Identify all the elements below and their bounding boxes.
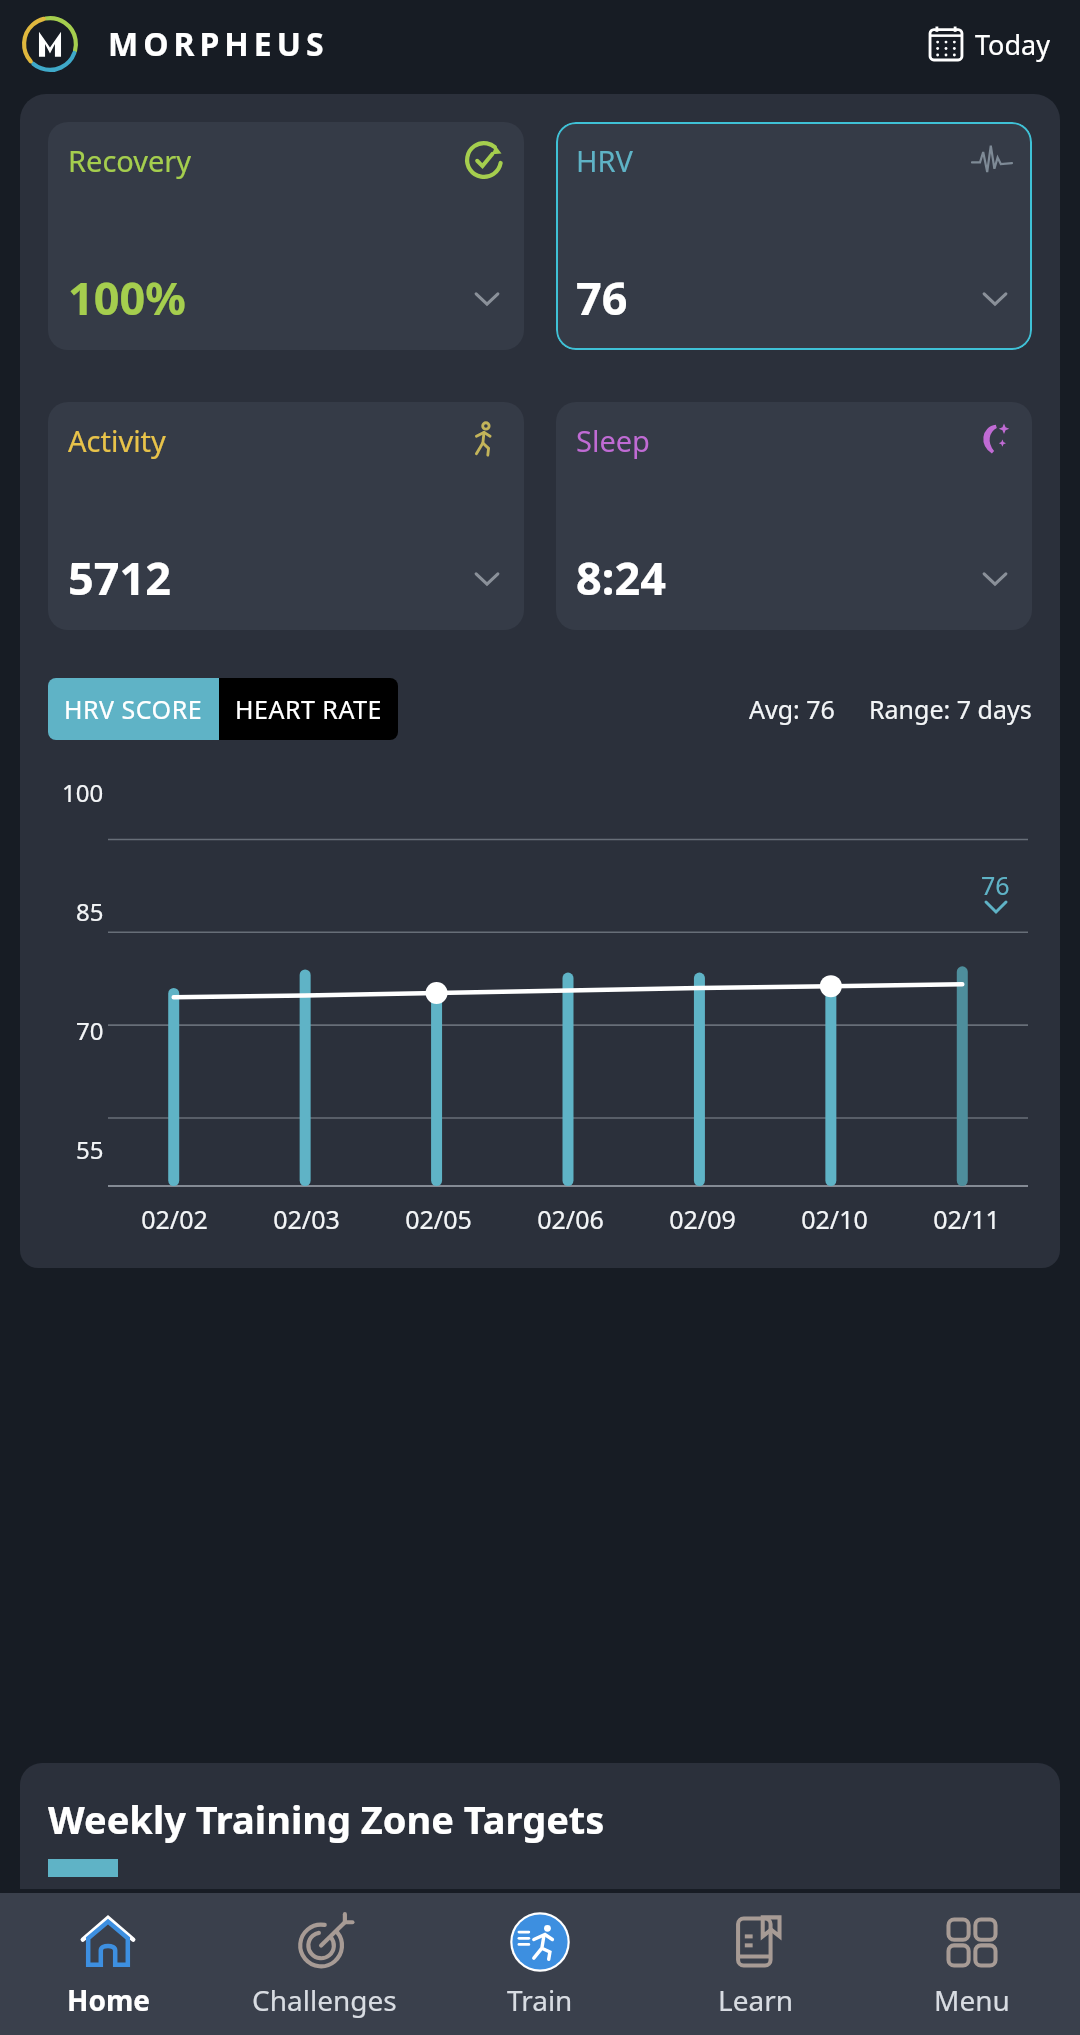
button[interactable]: Calendar bbox=[923, 21, 1054, 67]
staticText: 5712 bbox=[68, 547, 171, 608]
staticText: Today bbox=[975, 26, 1050, 63]
staticText: 02/06 bbox=[537, 1202, 604, 1236]
staticText: Range: 7 days bbox=[869, 692, 1032, 726]
staticText: 02/05 bbox=[405, 1202, 472, 1236]
staticText: Home bbox=[67, 1981, 150, 2019]
staticText: Menu bbox=[934, 1981, 1010, 2019]
staticText: HRV SCORE bbox=[64, 692, 203, 726]
button[interactable]: HRV SCORE bbox=[48, 678, 219, 740]
staticText: HRV bbox=[576, 141, 633, 180]
other: Menu bbox=[944, 1914, 1000, 1970]
staticText: 100 bbox=[62, 776, 104, 809]
button[interactable]: Activity bbox=[48, 402, 524, 630]
staticText: Activity bbox=[68, 421, 166, 460]
button[interactable]: Weekly Training Zone Targets bbox=[20, 1763, 1060, 1889]
staticText: Train bbox=[507, 1981, 573, 2019]
staticText: 100% bbox=[68, 267, 186, 328]
staticText: 02/10 bbox=[801, 1202, 868, 1236]
other: Learn bbox=[728, 1914, 784, 1970]
button[interactable]: HEART RATE bbox=[219, 678, 398, 740]
staticText: Learn bbox=[718, 1981, 794, 2019]
staticText: Weekly Training Zone Targets bbox=[48, 1793, 605, 1845]
staticText: Recovery bbox=[68, 141, 192, 180]
staticText: Avg: 76 bbox=[749, 692, 835, 726]
staticText: 55 bbox=[76, 1133, 104, 1166]
button[interactable]: Home bbox=[0, 1893, 216, 2035]
staticText: 02/02 bbox=[141, 1202, 208, 1236]
button[interactable]: HRV bbox=[556, 122, 1032, 350]
button[interactable]: Train bbox=[432, 1893, 648, 2035]
staticText: 70 bbox=[76, 1014, 104, 1047]
button[interactable]: Sleep bbox=[556, 402, 1032, 630]
staticText: HEART RATE bbox=[235, 692, 382, 726]
staticText: 8:24 bbox=[576, 547, 666, 608]
button[interactable]: Menu bbox=[864, 1893, 1080, 2035]
button[interactable]: Learn bbox=[648, 1893, 864, 2035]
staticText: 02/03 bbox=[273, 1202, 340, 1236]
staticText: 02/09 bbox=[669, 1202, 736, 1236]
staticText: 76 bbox=[576, 267, 628, 328]
other: Train bbox=[509, 1911, 571, 1973]
staticText: Sleep bbox=[576, 421, 650, 460]
staticText: 85 bbox=[76, 895, 104, 928]
other: Calendar bbox=[927, 25, 965, 63]
button[interactable]: Recovery bbox=[48, 122, 524, 350]
staticText: Challenges bbox=[252, 1981, 397, 2019]
staticText: MORPHEUS bbox=[108, 22, 329, 66]
button[interactable]: Challenges bbox=[216, 1893, 432, 2035]
other: Home bbox=[78, 1912, 138, 1972]
staticText: 02/11 bbox=[933, 1202, 1000, 1236]
staticText: 76 bbox=[981, 868, 1010, 902]
other: Challenges bbox=[295, 1913, 353, 1971]
